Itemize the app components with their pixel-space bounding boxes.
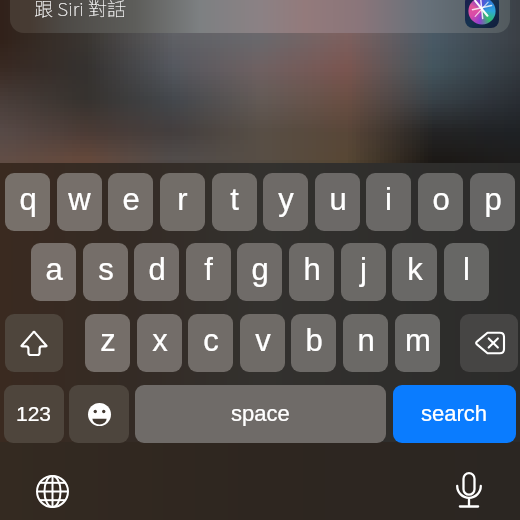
staticText: a bbox=[45, 252, 63, 287]
button[interactable]: t bbox=[212, 173, 257, 231]
button[interactable]: j bbox=[341, 243, 386, 301]
staticText: f bbox=[204, 252, 213, 287]
staticText: p bbox=[484, 182, 502, 217]
staticText: q bbox=[19, 182, 37, 217]
button[interactable]: v bbox=[240, 314, 285, 372]
button[interactable]: u bbox=[315, 173, 360, 231]
button[interactable]: f bbox=[186, 243, 231, 301]
button[interactable]: p bbox=[470, 173, 515, 231]
staticText: k bbox=[407, 252, 423, 287]
button[interactable]: k bbox=[392, 243, 437, 301]
staticText: b bbox=[305, 323, 323, 358]
staticText: u bbox=[329, 182, 347, 217]
button[interactable]: n bbox=[343, 314, 388, 372]
button[interactable]: h bbox=[289, 243, 334, 301]
button[interactable]: w bbox=[57, 173, 102, 231]
button[interactable]: search bbox=[393, 385, 516, 443]
staticText: i bbox=[385, 182, 392, 217]
staticText: z bbox=[100, 323, 116, 358]
button[interactable]: y bbox=[263, 173, 308, 231]
staticText: h bbox=[303, 252, 321, 287]
button[interactable]: r bbox=[160, 173, 205, 231]
button[interactable]: d bbox=[134, 243, 179, 301]
staticText: g bbox=[251, 252, 269, 287]
staticText: e bbox=[122, 182, 140, 217]
button[interactable]: e bbox=[108, 173, 153, 231]
staticText: n bbox=[357, 323, 375, 358]
button[interactable]: s bbox=[83, 243, 128, 301]
button[interactable]: Change keyboard bbox=[36, 475, 69, 508]
button[interactable]: o bbox=[418, 173, 463, 231]
staticText: c bbox=[203, 323, 219, 358]
button[interactable]: g bbox=[237, 243, 282, 301]
staticText: j bbox=[360, 252, 367, 287]
staticText: v bbox=[255, 323, 271, 358]
staticText: 123 bbox=[16, 402, 52, 425]
staticText: search bbox=[421, 401, 488, 426]
button[interactable]: Backspace bbox=[460, 314, 518, 372]
button[interactable]: Dictation bbox=[455, 471, 482, 509]
staticText: s bbox=[98, 252, 114, 287]
button[interactable]: i bbox=[366, 173, 411, 231]
button[interactable]: q bbox=[5, 173, 50, 231]
staticText: w bbox=[68, 182, 91, 217]
staticText: l bbox=[463, 252, 470, 287]
button[interactable]: Shift bbox=[5, 314, 63, 372]
staticText: 跟 Siri 對話 bbox=[34, 0, 126, 22]
staticText: t bbox=[230, 182, 239, 217]
button[interactable]: a bbox=[31, 243, 76, 301]
staticText: y bbox=[278, 182, 294, 217]
button[interactable]: space bbox=[135, 385, 386, 443]
button[interactable]: l bbox=[444, 243, 489, 301]
button[interactable]: 跟 Siri 對話 bbox=[10, 0, 510, 33]
staticText: o bbox=[432, 182, 450, 217]
staticText: r bbox=[177, 182, 188, 217]
staticText: x bbox=[152, 323, 168, 358]
staticText: space bbox=[231, 401, 290, 426]
button[interactable]: Emoji bbox=[69, 385, 129, 443]
button[interactable]: x bbox=[137, 314, 182, 372]
button[interactable]: 123 bbox=[4, 385, 64, 443]
button[interactable]: m bbox=[395, 314, 440, 372]
button[interactable]: b bbox=[291, 314, 336, 372]
staticText: m bbox=[405, 323, 431, 358]
button[interactable]: z bbox=[85, 314, 130, 372]
button[interactable]: c bbox=[188, 314, 233, 372]
staticText: d bbox=[148, 252, 166, 287]
